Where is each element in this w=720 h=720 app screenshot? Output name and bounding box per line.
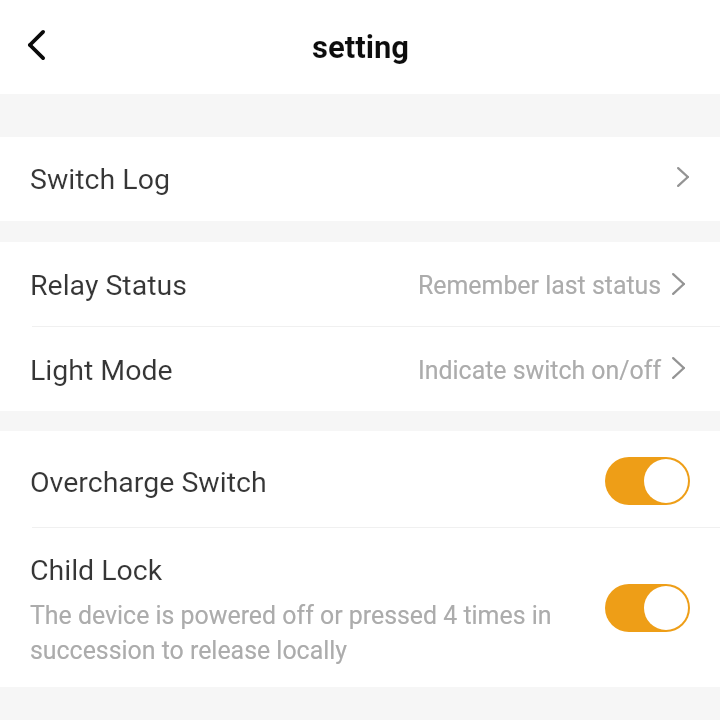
staticText: The device is powered off or pressed 4 t… bbox=[30, 601, 589, 665]
staticText: Child Lock bbox=[30, 554, 163, 587]
staticText: Remember last status bbox=[418, 271, 662, 300]
staticText: Switch Log bbox=[30, 163, 170, 196]
button[interactable]: Child Lock bbox=[0, 528, 720, 687]
button[interactable]: Switch Log bbox=[0, 137, 720, 221]
button[interactable]: Child Lock bbox=[605, 584, 690, 632]
button[interactable]: Overcharge Switch bbox=[605, 457, 690, 505]
button[interactable]: Relay Status bbox=[0, 242, 720, 326]
staticText: Indicate switch on/off bbox=[418, 356, 662, 385]
button[interactable]: Back bbox=[9, 18, 63, 72]
staticText: setting bbox=[312, 29, 409, 65]
button[interactable]: Overcharge Switch bbox=[0, 431, 720, 527]
staticText: Light Mode bbox=[30, 354, 173, 387]
staticText: Overcharge Switch bbox=[30, 466, 267, 499]
staticText: Relay Status bbox=[30, 269, 187, 302]
button[interactable]: Light Mode bbox=[0, 327, 720, 411]
